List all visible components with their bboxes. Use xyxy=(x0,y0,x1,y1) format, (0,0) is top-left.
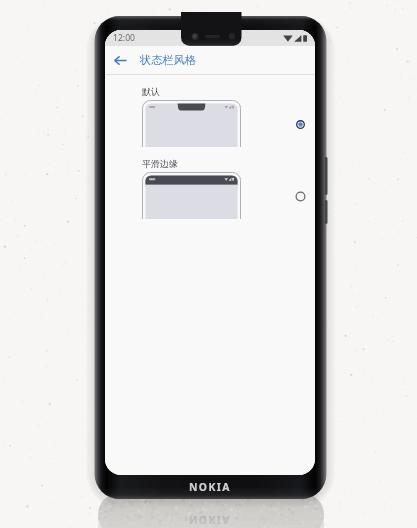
staticText: 默认 xyxy=(142,86,160,97)
button[interactable]: 平滑边缘 xyxy=(290,186,310,206)
button[interactable]: Back xyxy=(109,49,131,71)
button[interactable]: 平滑边缘 xyxy=(105,158,315,219)
staticText: 12:00 xyxy=(113,32,135,44)
staticText: NOKIA xyxy=(189,480,231,494)
button[interactable]: 默认 xyxy=(290,114,310,134)
staticText: NOKIA xyxy=(189,513,231,527)
button[interactable]: 默认 xyxy=(105,86,315,147)
staticText: 平滑边缘 xyxy=(142,158,178,169)
staticText: 状态栏风格 xyxy=(140,53,196,67)
